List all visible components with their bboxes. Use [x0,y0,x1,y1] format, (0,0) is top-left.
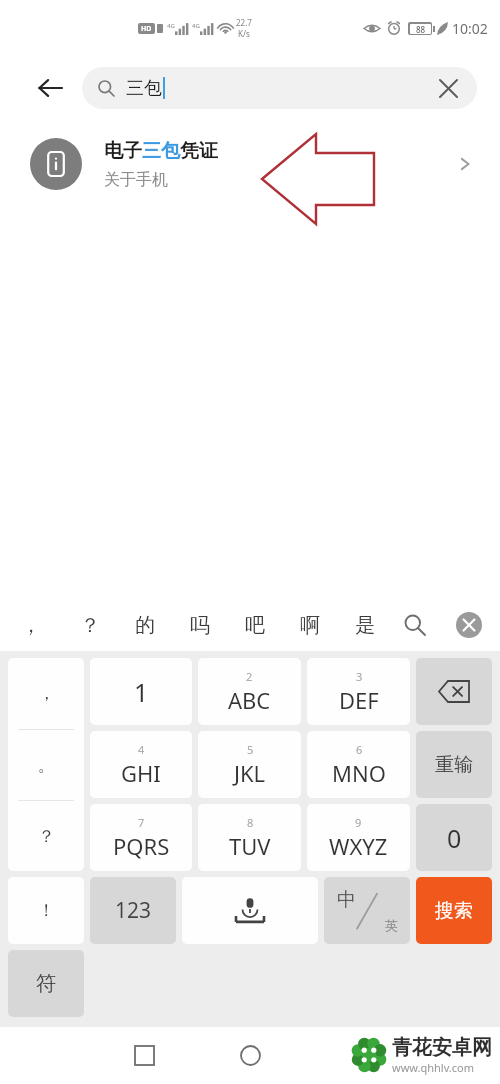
staticText: 重输 [435,753,473,777]
button[interactable]: Clear [435,75,461,101]
staticText: HD [141,24,152,34]
staticText: ABC [228,685,271,715]
staticText: 吧 [245,613,265,638]
button[interactable]: Space and voice input [182,877,318,944]
staticText: 3 [356,669,363,684]
staticText: ， [21,613,41,638]
button[interactable]: 是 [337,599,392,651]
button[interactable]: 啊 [282,599,337,651]
button[interactable]: 搜索 [416,877,492,944]
button[interactable]: 1 [90,658,192,725]
staticText: 2 [246,669,253,684]
button[interactable]: Close keyboard [438,599,500,651]
button[interactable]: 的 [117,599,172,651]
button[interactable]: ， [0,599,62,651]
button[interactable]: 电子三包凭证 [0,120,500,208]
staticText: 0 [447,821,462,855]
button[interactable]: 123 [90,877,176,944]
staticText: DEF [339,685,379,715]
staticText: 关于手机 [104,170,168,190]
button[interactable]: 2 [198,658,301,725]
button[interactable]: Recent apps [122,1033,166,1077]
button[interactable]: 0 [416,804,492,871]
staticText: JKL [234,758,266,788]
staticText: 5 [247,742,254,757]
staticText: 22.7 [236,17,252,28]
staticText: 8 [247,815,254,830]
staticText: 吗 [190,613,210,638]
button[interactable]: 9 [307,804,410,871]
staticText: K/s [238,28,250,39]
button[interactable]: Backspace [416,658,492,725]
staticText: 青花安卓网 [392,1035,492,1060]
staticText: 1 [134,675,149,709]
button[interactable]: Home [228,1033,272,1077]
staticText: PQRS [113,831,170,861]
button[interactable]: Back [30,68,70,108]
staticText: 搜索 [435,899,473,923]
button[interactable]: 吧 [227,599,282,651]
staticText: 。 [38,755,55,776]
staticText: 是 [355,613,375,638]
button[interactable]: 5 [198,731,301,798]
staticText: 啊 [300,613,320,638]
staticText: 电子三包凭证 [104,139,218,163]
staticText: GHI [121,758,161,788]
button[interactable]: 三包 [82,67,477,109]
button[interactable]: Search suggestions [392,599,438,651]
staticText: TUV [229,831,271,861]
button[interactable]: ？ [8,801,84,871]
staticText: 4G [167,22,175,30]
button[interactable]: ？ [62,599,117,651]
staticText: ？ [38,826,55,847]
staticText: 88 [416,24,426,34]
button[interactable]: ， [8,658,84,729]
staticText: ！ [38,900,55,921]
button[interactable]: 3 [307,658,410,725]
staticText: WXYZ [329,831,388,861]
staticText: MNO [332,758,386,788]
button[interactable]: 6 [307,731,410,798]
staticText: 的 [135,613,155,638]
staticText: 10:02 [452,19,488,38]
staticText: 中 [337,888,356,912]
button[interactable]: 符 [8,950,84,1017]
staticText: 6 [356,742,363,757]
button[interactable]: 7 [90,804,192,871]
staticText: ， [38,683,55,704]
staticText: www.qhhlv.com [392,1060,474,1075]
staticText: 4G [192,22,200,30]
button[interactable]: Open [448,147,482,181]
button[interactable]: 。 [8,730,84,800]
staticText: ？ [80,613,100,638]
button[interactable]: 8 [198,804,301,871]
button[interactable]: ！ [8,877,84,944]
staticText: 三包 [126,77,162,100]
button[interactable]: 重输 [416,731,492,798]
button[interactable]: 吗 [172,599,227,651]
button[interactable]: 4 [90,731,192,798]
staticText: 符 [36,971,56,996]
staticText: 4 [138,742,145,757]
staticText: 7 [138,815,145,830]
staticText: 9 [355,815,362,830]
button[interactable]: Chinese English toggle [324,877,410,944]
staticText: 英 [385,917,398,933]
staticText: 123 [115,896,152,925]
